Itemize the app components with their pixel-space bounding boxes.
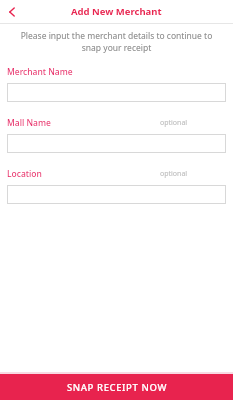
staticText: Add New Merchant — [71, 5, 162, 18]
button[interactable]: SNAP RECEIPT NOW — [0, 374, 233, 400]
button[interactable] — [7, 83, 226, 102]
staticText: optional — [160, 118, 188, 128]
staticText: Merchant Name — [7, 66, 73, 78]
staticText: Mall Name — [7, 117, 51, 129]
staticText: SNAP RECEIPT NOW — [67, 381, 167, 394]
button[interactable] — [7, 185, 226, 204]
button[interactable] — [7, 134, 226, 153]
staticText: Location — [7, 168, 42, 180]
staticText: optional — [160, 169, 188, 179]
staticText: Please input the merchant details to con… — [14, 30, 219, 54]
button[interactable]: Back — [0, 0, 26, 23]
